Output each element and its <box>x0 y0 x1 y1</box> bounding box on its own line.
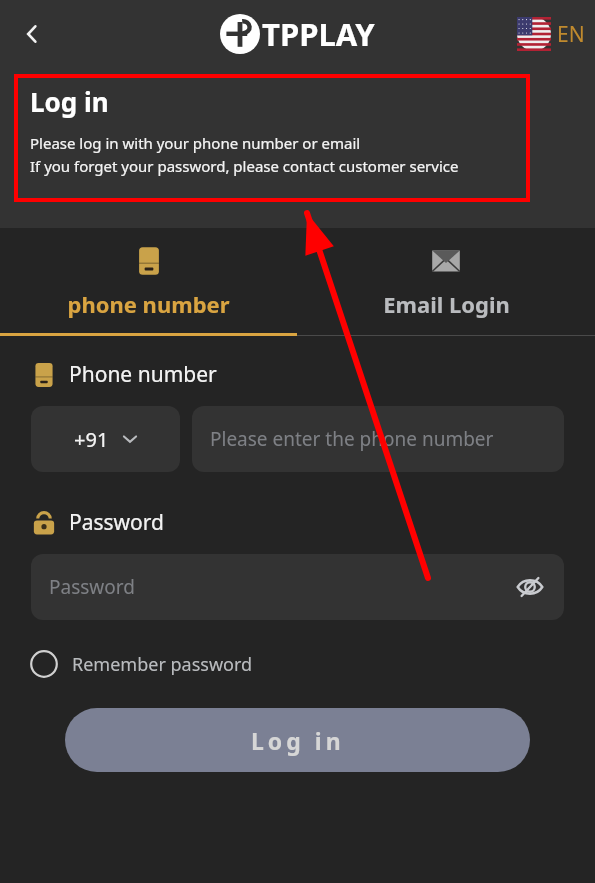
staticText: Phone number <box>69 360 217 389</box>
staticText: Please enter the phone number <box>210 426 494 452</box>
button[interactable]: EN <box>517 17 585 51</box>
staticText: Log in <box>30 84 109 119</box>
staticText: +91 <box>74 426 109 453</box>
staticText: TPPLAY <box>262 13 375 55</box>
button[interactable]: Email Login <box>297 228 595 336</box>
button[interactable]: +91 <box>31 406 180 472</box>
staticText: Password <box>49 574 135 600</box>
button[interactable]: Show password <box>510 567 550 607</box>
staticText: Email Login <box>383 289 510 319</box>
button[interactable]: phone number <box>0 228 297 336</box>
button[interactable]: Password <box>31 554 564 620</box>
button[interactable]: Back <box>8 10 56 58</box>
staticText: Log in <box>251 725 345 756</box>
button[interactable]: Remember password <box>26 646 257 682</box>
staticText: Please log in with your phone number or … <box>30 133 361 153</box>
staticText: Password <box>69 508 164 537</box>
staticText: Remember password <box>72 652 253 677</box>
button[interactable]: Log in <box>65 708 530 772</box>
button[interactable]: Please enter the phone number <box>192 406 564 472</box>
staticText: If you forget your password, please cont… <box>30 156 459 176</box>
staticText: phone number <box>67 289 230 319</box>
staticText: EN <box>557 20 585 49</box>
